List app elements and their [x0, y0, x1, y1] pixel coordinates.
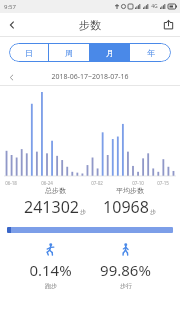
- staticText: 99.86%: [100, 260, 151, 280]
- staticText: 跑步: [45, 282, 57, 290]
- button[interactable]: Running: [23, 241, 78, 291]
- staticText: 平均步数: [116, 186, 144, 195]
- button[interactable]: Previous period: [3, 69, 19, 85]
- button[interactable]: Walking: [94, 241, 157, 291]
- staticText: 总步数: [45, 186, 66, 195]
- staticText: 0.14%: [29, 260, 72, 280]
- staticText: 年: [147, 48, 155, 58]
- staticText: 月: [106, 48, 114, 58]
- staticText: 步: [150, 208, 156, 216]
- button[interactable]: Back: [0, 13, 23, 36]
- staticText: 日: [25, 48, 33, 58]
- other: Walking: [118, 242, 133, 257]
- button[interactable]: 月: [89, 43, 130, 62]
- staticText: 9:57: [4, 3, 16, 11]
- staticText: 07-15: [157, 180, 169, 186]
- staticText: 步: [80, 208, 86, 216]
- staticText: 周: [65, 48, 73, 58]
- button[interactable]: 周: [49, 43, 89, 62]
- button[interactable]: 年: [130, 43, 171, 62]
- staticText: 07-02: [91, 180, 103, 186]
- button[interactable]: Share: [157, 13, 180, 36]
- staticText: 10968: [103, 196, 149, 218]
- staticText: 步数: [79, 18, 101, 32]
- staticText: 4G: [151, 3, 158, 10]
- staticText: 06-24: [41, 180, 53, 186]
- button[interactable]: 日: [9, 43, 49, 62]
- staticText: 2018-06-17~2018-07-16: [51, 72, 129, 82]
- staticText: 07-10: [132, 180, 144, 186]
- staticText: 241302: [24, 196, 79, 218]
- other: Running: [43, 242, 58, 257]
- staticText: 步行: [120, 282, 132, 290]
- staticText: 06-18: [5, 180, 17, 186]
